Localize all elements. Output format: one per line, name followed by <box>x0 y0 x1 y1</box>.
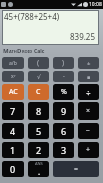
staticText: 10:08 <box>89 1 102 8</box>
staticText: ATH <box>9 49 17 54</box>
button[interactable]: a/b <box>2 57 24 69</box>
button[interactable]: 9 <box>53 102 74 120</box>
staticText: 45+(788+25+4) <box>4 11 60 22</box>
staticText: C <box>36 87 41 97</box>
staticText: − <box>86 126 91 136</box>
staticText: 839.25 <box>70 31 96 42</box>
staticText: 2 <box>36 144 42 156</box>
staticText: 7 <box>10 105 16 117</box>
staticText: 5 <box>36 125 42 137</box>
staticText: AC <box>9 87 18 97</box>
staticText: · <box>63 72 65 82</box>
button[interactable]: ANS <box>28 161 49 177</box>
staticText: 6 <box>61 125 67 137</box>
button[interactable]: 3 <box>53 142 74 158</box>
staticText: ÷ <box>86 87 91 98</box>
button[interactable]: ▪ <box>78 71 99 82</box>
button[interactable]: ) <box>53 57 74 69</box>
staticText: 8 <box>36 105 42 117</box>
staticText: ROID <box>22 49 34 54</box>
staticText: √ <box>37 73 41 80</box>
button[interactable]: 0 <box>2 161 24 177</box>
button[interactable]: √ <box>28 71 49 82</box>
staticText: a/b <box>9 60 17 67</box>
button[interactable]: 5 <box>28 123 49 139</box>
staticText: ± <box>87 59 91 67</box>
staticText: Calc <box>34 48 45 55</box>
button[interactable]: % <box>53 84 74 100</box>
staticText: 3 <box>61 144 67 156</box>
button[interactable]: = <box>53 161 99 177</box>
button[interactable]: + <box>78 142 99 158</box>
staticText: ▪ <box>87 74 91 80</box>
button[interactable]: × <box>78 102 99 120</box>
button[interactable]: 8 <box>28 102 49 120</box>
button[interactable]: 1 <box>2 142 24 158</box>
button[interactable]: · <box>53 71 74 82</box>
button[interactable]: 7 <box>2 102 24 120</box>
staticText: xʸ <box>11 73 16 80</box>
staticText: × <box>86 106 91 116</box>
button[interactable]: 2 <box>28 142 49 158</box>
staticText: D <box>17 47 22 55</box>
staticText: = <box>74 164 79 174</box>
button[interactable]: ± <box>78 57 99 69</box>
button[interactable]: ÷ <box>78 84 99 100</box>
staticText: 1 <box>10 144 16 156</box>
button[interactable]: − <box>78 123 99 139</box>
staticText: . <box>38 166 41 177</box>
staticText: 9 <box>61 105 67 117</box>
staticText: ( <box>37 58 40 68</box>
staticText: ANS <box>35 161 43 166</box>
staticText: % <box>61 87 67 97</box>
staticText: ) <box>62 58 65 68</box>
button[interactable]: 4 <box>2 123 24 139</box>
button[interactable]: 6 <box>53 123 74 139</box>
staticText: 4 <box>10 125 16 137</box>
staticText: + <box>86 145 91 155</box>
button[interactable]: ( <box>28 57 49 69</box>
staticText: 0 <box>10 163 16 175</box>
button[interactable]: AC <box>2 84 24 100</box>
staticText: M <box>3 47 9 55</box>
button[interactable]: xʸ <box>2 71 24 82</box>
button[interactable]: C <box>28 84 49 100</box>
